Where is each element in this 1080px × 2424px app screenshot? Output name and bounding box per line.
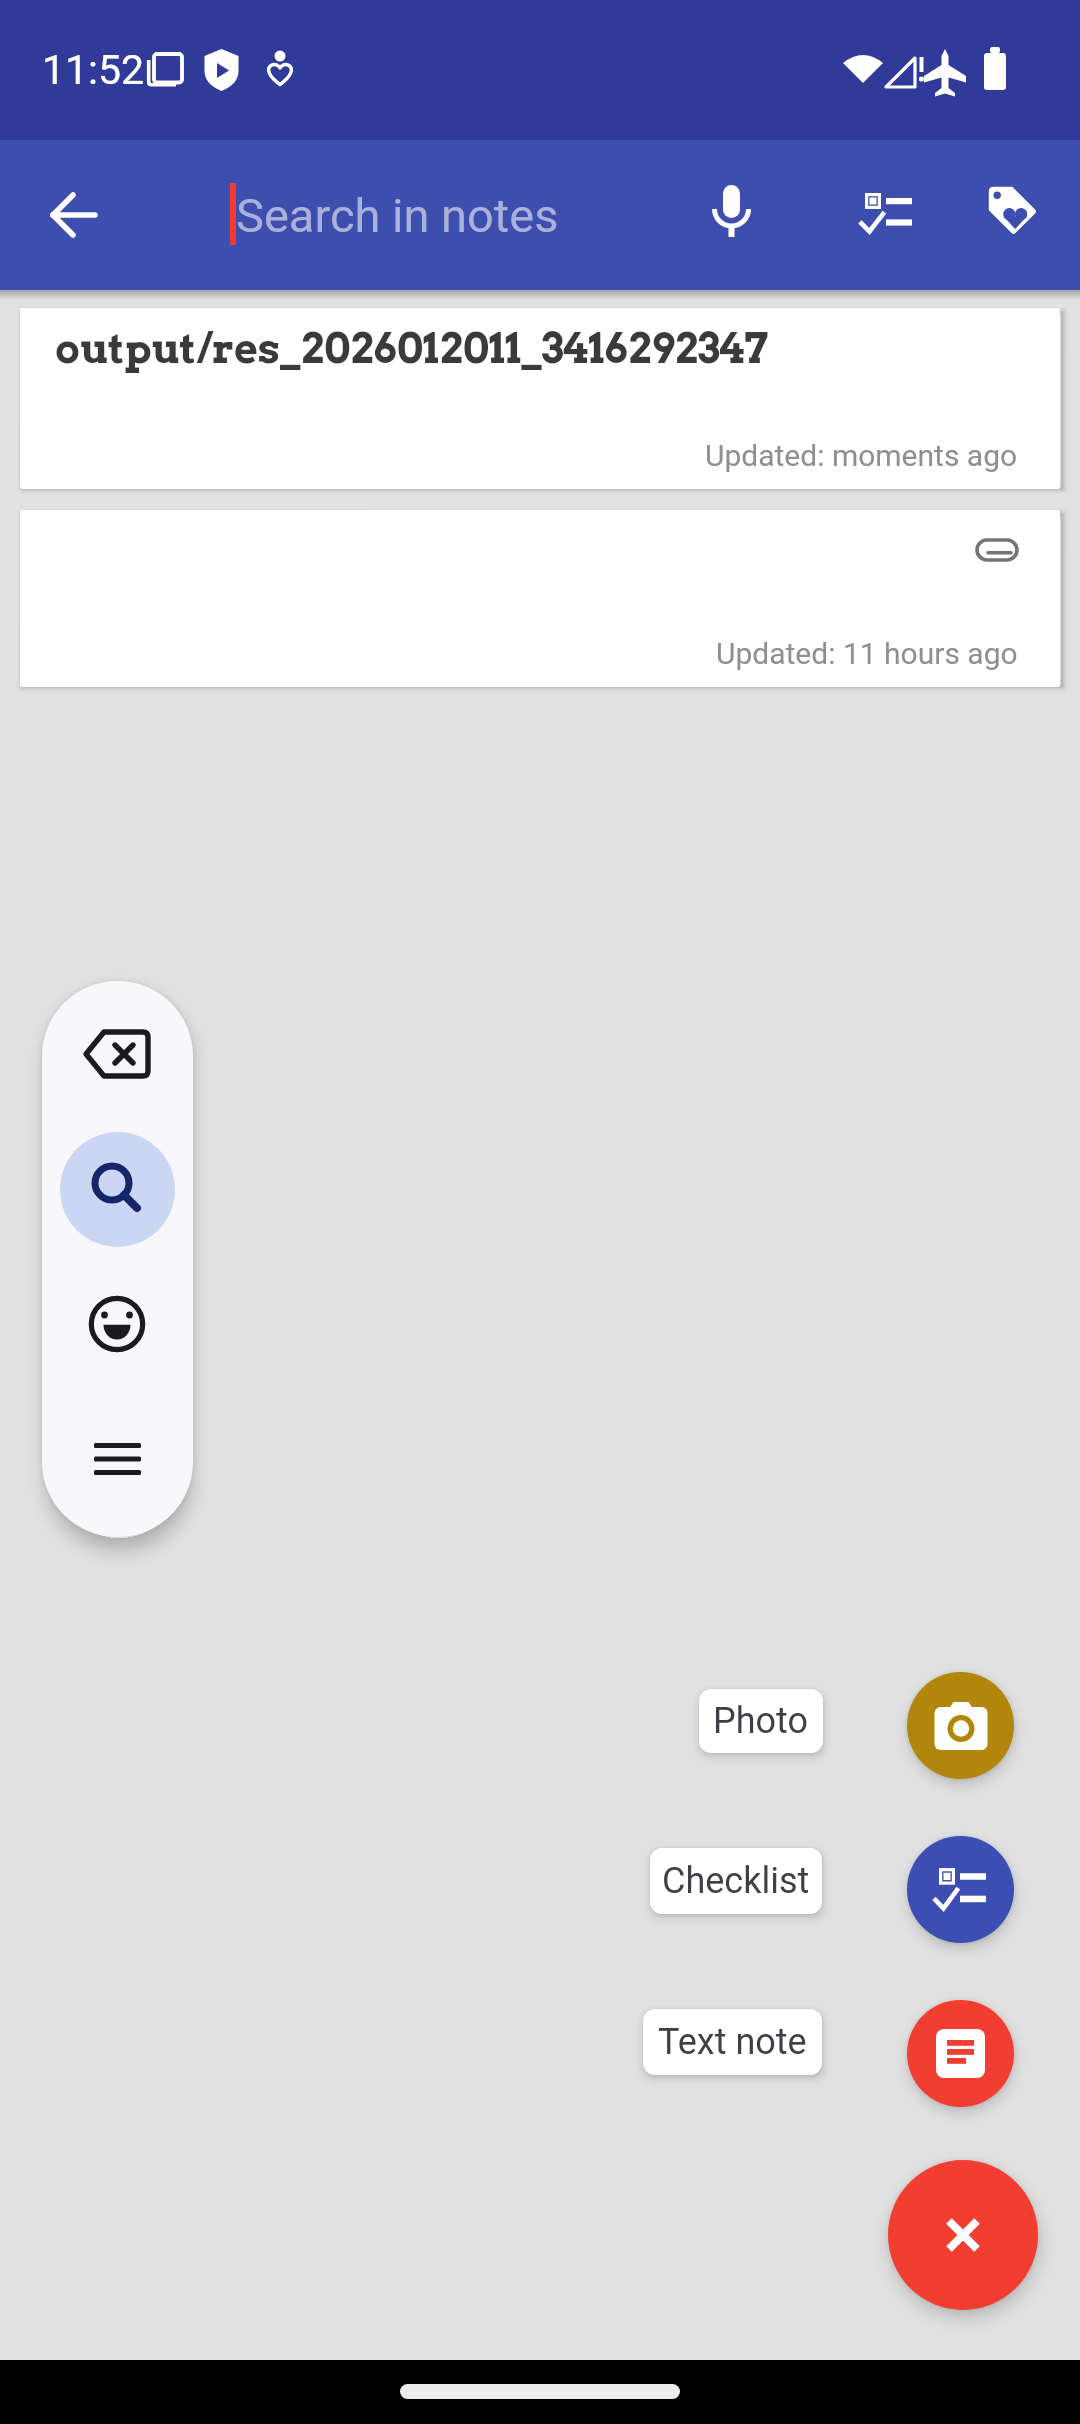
button[interactable] [907,1672,1014,1779]
staticText: 11:52 [42,46,145,94]
button[interactable]: Updated: 11 hours ago [20,510,1060,687]
staticText: Search in notes [236,188,559,243]
button[interactable]: Photo [699,1689,823,1753]
staticText: Photo [713,1700,809,1742]
button[interactable]: Text note [643,2009,822,2075]
staticText: Updated: 11 hours ago [716,636,1018,671]
staticText: Updated: moments ago [705,438,1018,473]
button[interactable]: Checklist [650,1848,822,1914]
button[interactable] [67,1406,167,1511]
staticText: output/res_2026012011_3416292347 [55,324,769,374]
button[interactable] [960,158,1070,268]
button[interactable]: Search in notes [236,140,756,290]
button[interactable] [676,158,786,268]
button[interactable] [67,1271,167,1376]
button[interactable] [831,158,941,268]
staticText: Text note [658,2021,807,2063]
button[interactable] [20,160,128,270]
staticText: Checklist [662,1860,810,1902]
button[interactable] [907,1836,1014,1943]
button[interactable] [60,1132,175,1247]
button[interactable]: output/res_2026012011_3416292347 [20,308,1060,489]
button[interactable] [67,1001,167,1106]
button[interactable] [907,2000,1014,2107]
button[interactable] [888,2160,1038,2310]
